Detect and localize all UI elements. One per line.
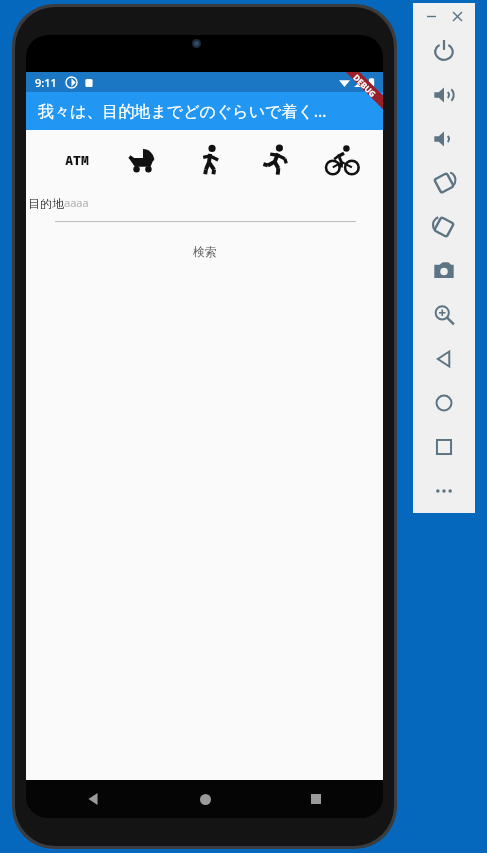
button[interactable]: Screenshot (413, 249, 475, 293)
button[interactable]: Rotate left (413, 161, 475, 205)
button[interactable]: Volume up (413, 73, 475, 117)
button[interactable]: Stroller (120, 140, 166, 180)
button[interactable]: Bike (319, 140, 365, 180)
button[interactable]: Recents (299, 782, 333, 816)
button[interactable]: Close (449, 8, 465, 24)
staticText: 検索 (193, 244, 217, 259)
button[interactable]: Zoom (413, 293, 475, 337)
staticText: 我々は、目的地までどのぐらいで着く… (38, 100, 327, 122)
button[interactable]: Rotate right (413, 205, 475, 249)
button[interactable]: Minimize (423, 8, 439, 24)
button[interactable]: Back (413, 337, 475, 381)
staticText: 9:11 (35, 75, 57, 90)
button[interactable]: Home (413, 381, 475, 425)
button[interactable]: Walk (187, 140, 233, 180)
button[interactable]: ATM (54, 140, 100, 180)
button[interactable]: 我々は、目的地までどのぐらいで着く… (26, 92, 383, 130)
staticText: ATM (65, 151, 89, 169)
button[interactable]: Power (413, 29, 475, 73)
button[interactable]: 検索 (26, 238, 383, 264)
staticText: 目的地 (28, 196, 64, 211)
button[interactable]: Home (188, 782, 222, 816)
staticText: DEBUG (351, 72, 379, 99)
button[interactable]: Volume down (413, 117, 475, 161)
button[interactable]: Back (76, 782, 110, 816)
button[interactable]: Overview (413, 425, 475, 469)
button[interactable]: Run (253, 140, 299, 180)
staticText: aaaa (64, 195, 89, 210)
button[interactable]: More (413, 469, 475, 513)
